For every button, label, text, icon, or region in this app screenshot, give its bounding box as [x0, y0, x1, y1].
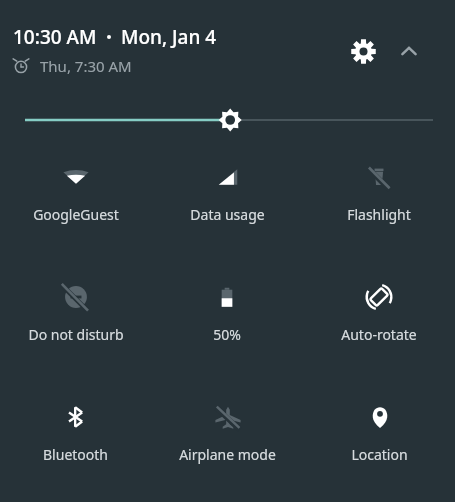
staticText: Auto-rotate — [341, 325, 417, 344]
staticText: 10:30 AM — [13, 24, 97, 50]
staticText: 50% — [213, 325, 241, 344]
staticText: Data usage — [190, 205, 265, 224]
button[interactable]: Auto-rotate — [303, 265, 455, 385]
button[interactable]: Do not disturb — [0, 265, 151, 385]
staticText: Thu, 7:30 AM — [40, 56, 132, 76]
button[interactable]: Location — [303, 385, 455, 483]
button[interactable]: Bluetooth — [0, 385, 151, 483]
staticText: Do not disturb — [28, 325, 124, 344]
staticText: Location — [351, 445, 408, 464]
button[interactable]: Collapse — [386, 28, 432, 74]
button[interactable]: Flashlight — [303, 145, 455, 265]
button[interactable]: Settings — [340, 28, 386, 74]
staticText: Bluetooth — [43, 445, 108, 464]
button[interactable]: Data usage — [151, 145, 303, 265]
button[interactable]: GoogleGuest — [0, 145, 151, 265]
button[interactable]: Brightness — [0, 95, 455, 145]
button[interactable]: 50% — [151, 265, 303, 385]
staticText: GoogleGuest — [33, 205, 119, 224]
button[interactable]: Airplane mode — [151, 385, 303, 483]
staticText: Mon, Jan 4 — [121, 24, 217, 50]
staticText: Airplane mode — [179, 445, 276, 464]
staticText: Flashlight — [347, 205, 411, 224]
